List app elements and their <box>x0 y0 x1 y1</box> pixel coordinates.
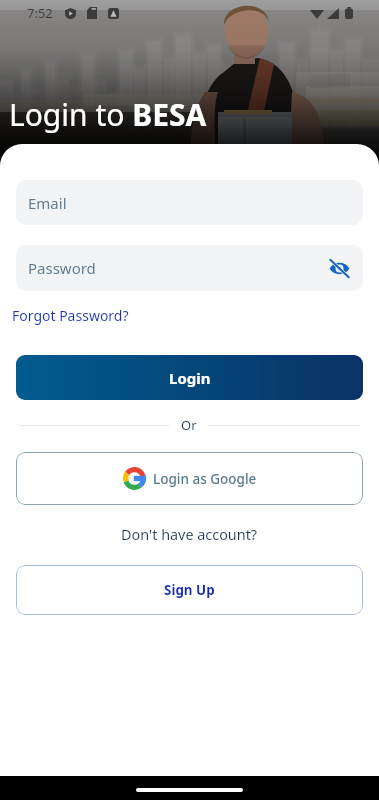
staticText: Login as Google <box>153 470 257 488</box>
button[interactable]: Password <box>16 245 363 291</box>
button[interactable]: Show password <box>324 253 354 283</box>
staticText: Password <box>28 258 96 278</box>
button[interactable]: Forgot Password? <box>12 304 129 327</box>
button[interactable]: Email <box>16 180 363 225</box>
button[interactable]: Login as Google <box>16 452 363 505</box>
staticText: Or <box>181 416 197 434</box>
staticText: Don't have account? <box>121 525 258 545</box>
button[interactable]: Login <box>16 355 363 400</box>
staticText: 7:52 <box>27 4 53 22</box>
staticText: Login <box>169 368 211 388</box>
staticText: Forgot Password? <box>12 306 129 325</box>
staticText: Email <box>28 193 67 213</box>
staticText: Login to BESA <box>9 94 207 135</box>
staticText: Sign Up <box>164 581 215 599</box>
button[interactable]: Sign Up <box>16 565 363 615</box>
